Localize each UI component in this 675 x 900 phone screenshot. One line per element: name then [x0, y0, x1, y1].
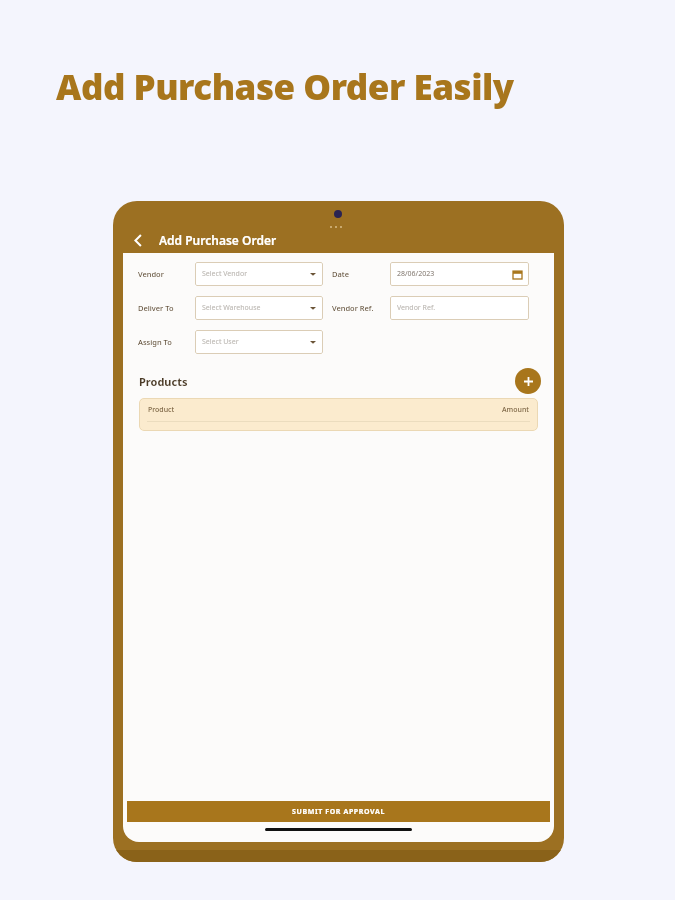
button[interactable]: Vendor Ref.: [390, 296, 529, 320]
staticText: Deliver To: [138, 303, 174, 313]
staticText: SUBMIT FOR APPROVAL: [292, 807, 385, 817]
staticText: Add Purchase Order: [159, 232, 277, 248]
staticText: Product: [148, 405, 175, 415]
staticText: Date: [332, 269, 349, 279]
staticText: Add Purchase Order Easily: [56, 63, 514, 111]
button[interactable]: Product: [139, 398, 538, 431]
button[interactable]: Select Warehouse: [195, 296, 323, 320]
staticText: Select Warehouse: [202, 303, 261, 313]
button[interactable]: 28/06/2023: [390, 262, 529, 286]
staticText: Amount: [502, 405, 529, 415]
button[interactable]: SUBMIT FOR APPROVAL: [127, 801, 550, 822]
button[interactable]: Add product: [515, 368, 541, 394]
button[interactable]: Select Vendor: [195, 262, 323, 286]
staticText: Select Vendor: [202, 269, 248, 279]
button[interactable]: Select User: [195, 330, 323, 354]
staticText: Vendor Ref.: [332, 303, 374, 313]
staticText: Vendor Ref.: [397, 303, 436, 313]
button[interactable]: Back: [126, 228, 150, 252]
staticText: Select User: [202, 337, 239, 347]
staticText: Vendor: [138, 269, 164, 279]
staticText: Assign To: [138, 337, 172, 347]
staticText: Products: [139, 374, 188, 389]
staticText: 28/06/2023: [397, 269, 435, 279]
